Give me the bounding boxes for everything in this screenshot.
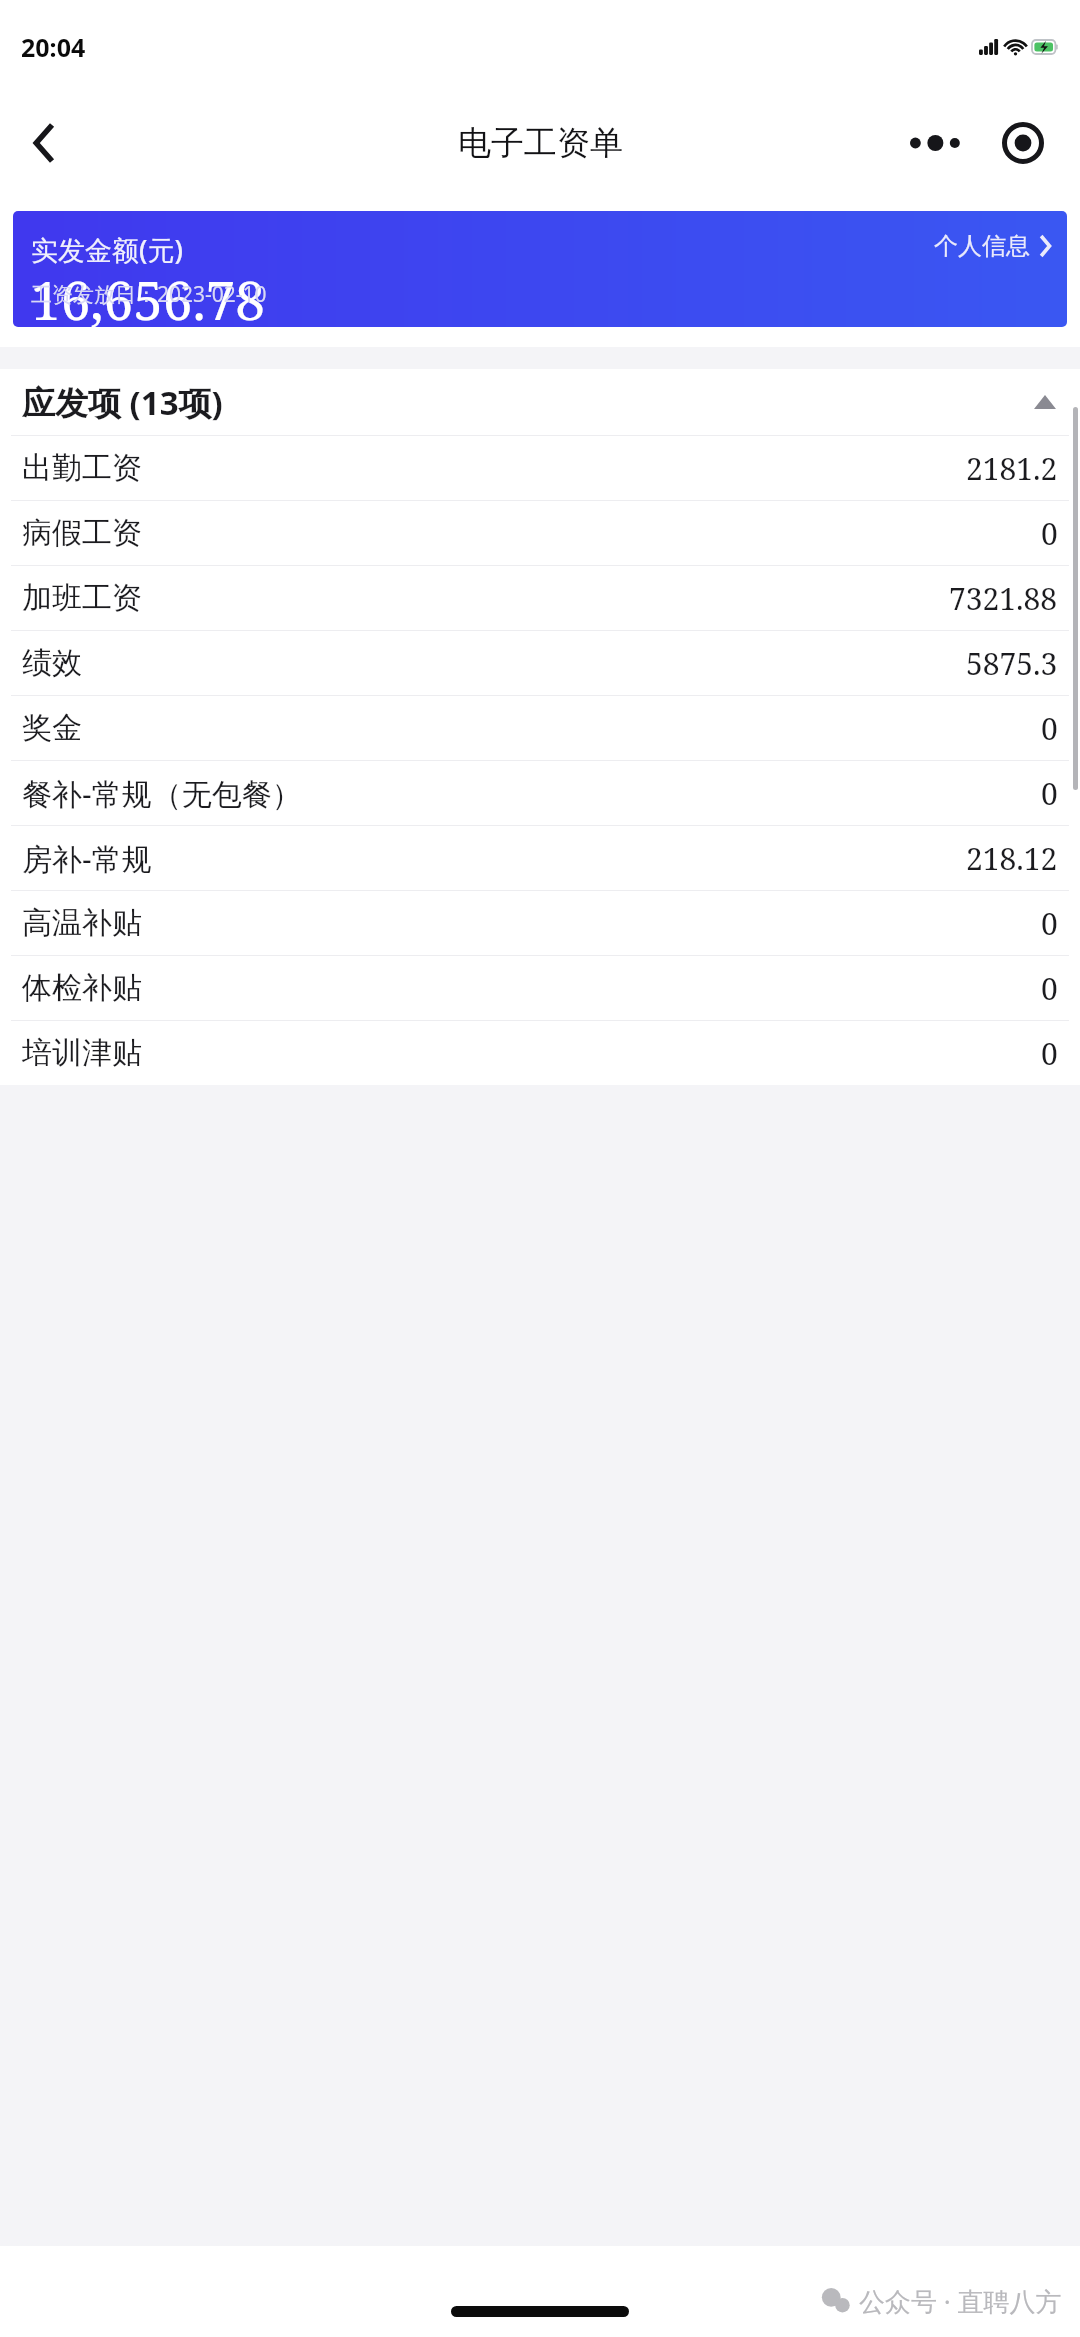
staticText: 0 <box>1041 903 1058 944</box>
staticText: 7321.88 <box>949 578 1058 619</box>
staticText: 个人信息 <box>934 231 1030 261</box>
staticText: 电子工资单 <box>458 122 623 164</box>
button[interactable]: More options <box>900 112 974 174</box>
staticText: 0 <box>1041 1033 1058 1074</box>
staticText: 工资发放日：2023-02-10 <box>31 280 267 309</box>
button[interactable]: 绩效 <box>0 631 1080 695</box>
staticText: 218.12 <box>966 838 1058 879</box>
button[interactable]: 高温补贴 <box>0 891 1080 955</box>
button[interactable]: 个人信息 <box>934 231 1055 261</box>
button[interactable]: 出勤工资 <box>0 436 1080 500</box>
staticText: 餐补-常规（无包餐） <box>22 773 302 814</box>
staticText: 16,656.78 <box>31 263 265 327</box>
staticText: 绩效 <box>22 644 82 682</box>
staticText: 5875.3 <box>966 643 1058 684</box>
staticText: 应发项 (13项) <box>22 380 223 425</box>
staticText: 实发金额(元) <box>31 231 183 268</box>
button[interactable]: 餐补-常规（无包餐） <box>0 761 1080 825</box>
button[interactable]: 奖金 <box>0 696 1080 760</box>
staticText: 体检补贴 <box>22 969 142 1007</box>
button[interactable]: 实发金额(元) <box>13 211 1067 327</box>
button[interactable]: 应发项 (13项) <box>0 369 1080 435</box>
staticText: 公众号 · 直聘八方 <box>859 2283 1062 2319</box>
button[interactable]: Close <box>990 110 1056 176</box>
staticText: 20:04 <box>21 30 86 64</box>
staticText: 0 <box>1041 773 1058 814</box>
button[interactable]: 病假工资 <box>0 501 1080 565</box>
staticText: 高温补贴 <box>22 904 142 942</box>
button[interactable]: 加班工资 <box>0 566 1080 630</box>
button[interactable]: Back <box>14 112 76 174</box>
staticText: 2181.2 <box>966 448 1058 489</box>
staticText: 0 <box>1041 513 1058 554</box>
staticText: 房补-常规 <box>22 838 152 879</box>
button[interactable]: 体检补贴 <box>0 956 1080 1020</box>
staticText: 0 <box>1041 968 1058 1009</box>
staticText: 加班工资 <box>22 579 142 617</box>
staticText: 培训津贴 <box>22 1034 142 1072</box>
staticText: 病假工资 <box>22 514 142 552</box>
button[interactable]: 培训津贴 <box>0 1021 1080 1085</box>
staticText: 0 <box>1041 708 1058 749</box>
staticText: 出勤工资 <box>22 449 142 487</box>
button[interactable]: 房补-常规 <box>0 826 1080 890</box>
staticText: 奖金 <box>22 709 82 747</box>
